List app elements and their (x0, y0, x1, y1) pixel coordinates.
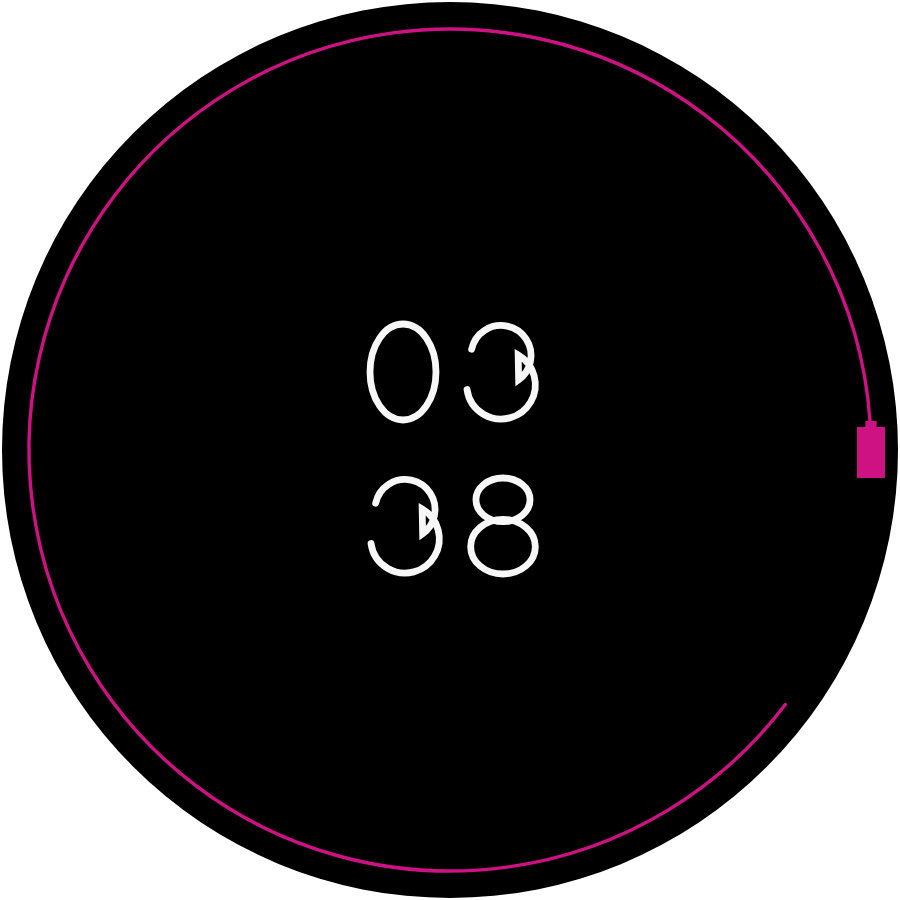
button[interactable]: Watch face showing 03:38 with battery in… (0, 0, 900, 900)
